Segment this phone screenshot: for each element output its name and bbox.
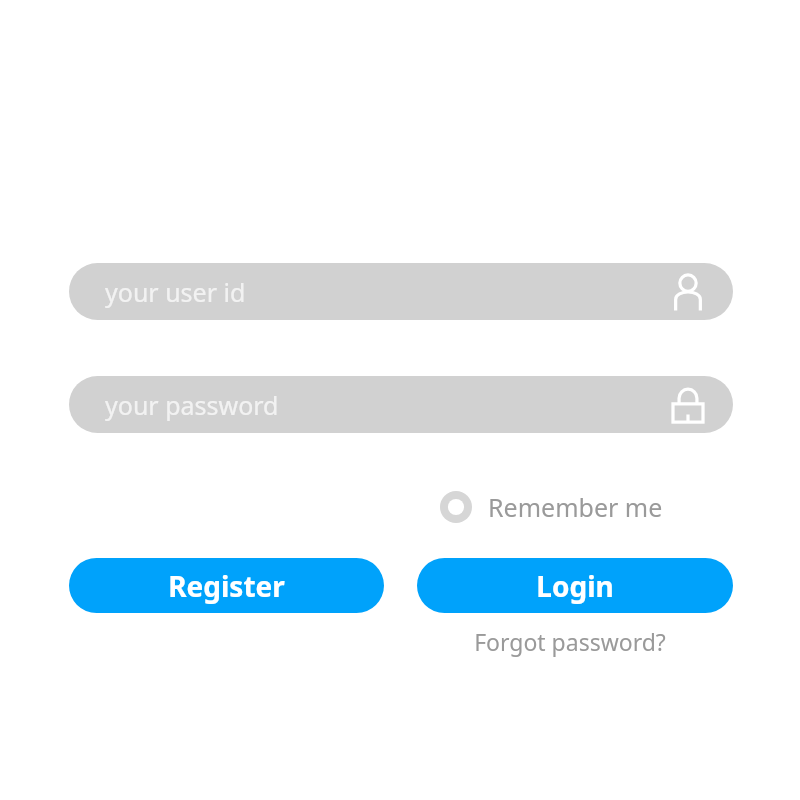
staticText: Forgot password? bbox=[474, 626, 666, 657]
button[interactable]: Remember me bbox=[438, 487, 656, 527]
other: User bbox=[669, 273, 707, 311]
button[interactable]: Forgot password? bbox=[470, 623, 670, 659]
button[interactable]: your password bbox=[69, 376, 733, 433]
button[interactable]: Login bbox=[417, 558, 733, 613]
other: Password bbox=[669, 386, 707, 424]
staticText: your user id bbox=[105, 275, 246, 309]
staticText: Login bbox=[536, 567, 614, 605]
button[interactable]: your user id bbox=[69, 263, 733, 320]
staticText: Register bbox=[168, 567, 285, 605]
staticText: your password bbox=[105, 388, 279, 422]
staticText: Remember me bbox=[488, 490, 663, 524]
button[interactable]: Register bbox=[69, 558, 384, 613]
